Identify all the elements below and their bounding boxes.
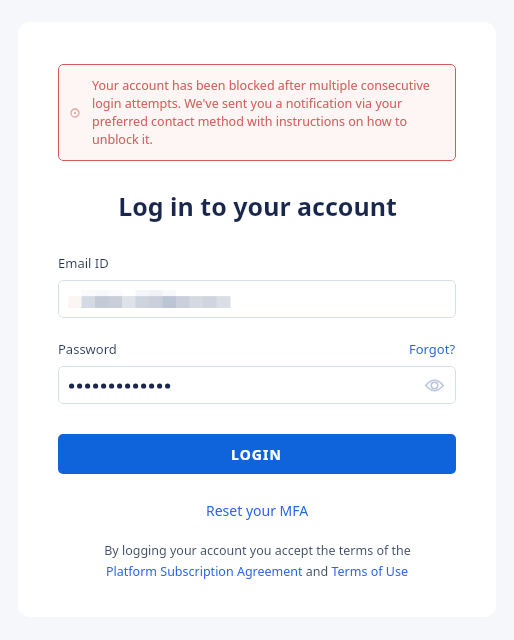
- button[interactable]: Show password: [58, 366, 456, 404]
- button[interactable]: [58, 280, 456, 318]
- button[interactable]: Reset your MFA: [206, 501, 309, 520]
- staticText: LOGIN: [231, 445, 283, 464]
- staticText: Platform Subscription Agreement and Term…: [106, 563, 408, 580]
- button[interactable]: Show password: [425, 376, 444, 395]
- button[interactable]: LOGIN: [58, 434, 456, 474]
- staticText: Your account has been blocked after mult…: [92, 77, 440, 148]
- button[interactable]: Platform Subscription Agreement and Term…: [58, 563, 456, 580]
- staticText: Log in to your account: [118, 189, 397, 223]
- staticText: Password: [58, 340, 117, 358]
- staticText: Forgot?: [409, 340, 456, 358]
- staticText: Reset your MFA: [206, 501, 309, 520]
- button[interactable]: Forgot?: [409, 340, 456, 358]
- staticText: By logging your account you accept the t…: [104, 542, 411, 559]
- staticText: Email ID: [58, 254, 109, 272]
- other: Information: [68, 106, 82, 120]
